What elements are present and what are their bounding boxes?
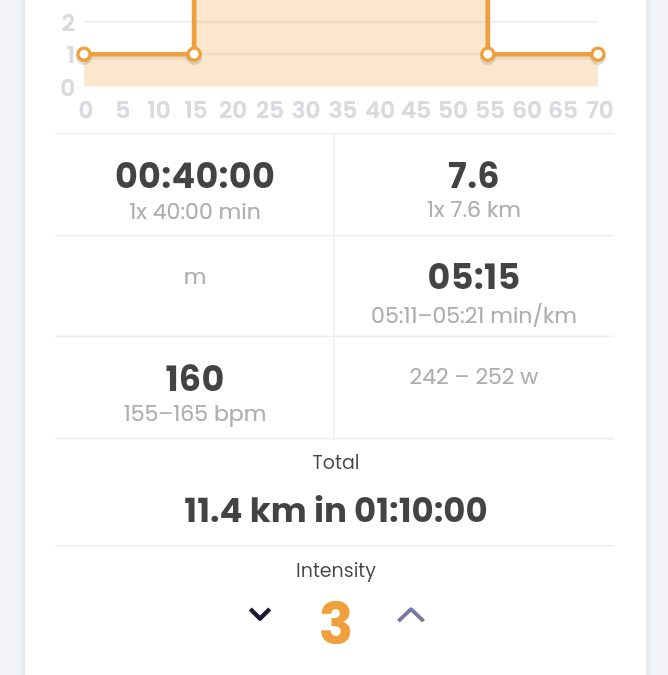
staticText: 242 – 252 w [274, 361, 668, 392]
staticText: 60 [497, 94, 557, 126]
staticText: 30 [276, 94, 336, 126]
staticText: 50 [423, 94, 483, 126]
staticText: 155–165 bpm [0, 398, 395, 429]
staticText: 0 [35, 72, 75, 104]
staticText: 00:40:00 [0, 151, 395, 200]
button[interactable]: Power 242 – 252 w [334, 336, 614, 438]
staticText: 3 [136, 584, 536, 664]
staticText: 40 [350, 94, 410, 126]
button[interactable]: Distance 7.6 km [334, 134, 614, 236]
staticText: 25 [240, 94, 300, 126]
button[interactable]: Increase intensity [387, 590, 435, 638]
button[interactable]: Heart rate 160 bpm [55, 336, 334, 438]
staticText: 55 [460, 94, 520, 126]
staticText: 20 [203, 94, 263, 126]
button[interactable]: Ascent in metres [55, 236, 334, 337]
button[interactable]: Pace 05:15 min/km [334, 236, 614, 337]
staticText: 05:15 [274, 252, 668, 301]
staticText: 35 [313, 94, 373, 126]
staticText: 1x 40:00 min [0, 196, 395, 227]
staticText: 1 [35, 39, 75, 71]
staticText: 05:11–05:21 min/km [274, 300, 668, 331]
staticText: 11.4 km in 01:10:00 [136, 486, 536, 534]
staticText: 5 [93, 94, 153, 126]
staticText: 1x 7.6 km [274, 194, 668, 225]
staticText: 65 [533, 94, 593, 126]
staticText: 45 [386, 94, 446, 126]
staticText: 7.6 [274, 151, 668, 200]
staticText: 0 [56, 94, 116, 126]
staticText: 15 [166, 94, 226, 126]
staticText: 10 [129, 94, 189, 126]
staticText: 160 [0, 354, 395, 403]
button[interactable]: Decrease intensity [236, 590, 284, 638]
staticText: m [0, 261, 395, 292]
button[interactable]: Duration 00:40:00 [55, 134, 334, 236]
staticText: Total [136, 449, 536, 476]
staticText: Intensity [136, 557, 536, 584]
staticText: 70 [570, 94, 630, 126]
staticText: 2 [35, 7, 75, 39]
